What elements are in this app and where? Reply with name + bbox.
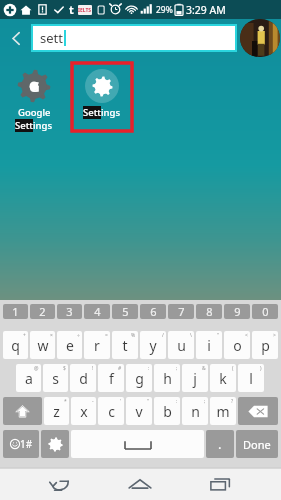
button[interactable]: z: [44, 397, 69, 425]
staticText: 1#: [20, 437, 33, 451]
button[interactable]: p: [252, 331, 278, 359]
button[interactable]: b: [154, 397, 180, 425]
button[interactable]: 8: [196, 304, 222, 319]
button[interactable]: s: [43, 364, 68, 392]
button[interactable]: x: [71, 397, 96, 425]
button[interactable]: Backspace: [238, 397, 278, 425]
button[interactable]: 0: [252, 304, 278, 319]
button[interactable]: e: [57, 331, 82, 359]
button[interactable]: 6: [140, 304, 166, 319]
button[interactable]: h: [154, 364, 180, 392]
staticText: b: [163, 402, 172, 421]
staticText: 1: [12, 304, 19, 319]
button[interactable]: 7: [168, 304, 194, 319]
staticText: 29%: [156, 4, 173, 16]
staticText: t: [69, 2, 74, 17]
staticText: h: [163, 369, 172, 388]
button[interactable]: g: [126, 364, 152, 392]
button[interactable]: 2: [30, 304, 55, 319]
staticText: $: [63, 365, 66, 372]
staticText: ": [217, 332, 220, 339]
button[interactable]: u: [168, 331, 194, 359]
button[interactable]: d: [70, 364, 96, 392]
staticText: d: [79, 369, 88, 388]
button[interactable]: v: [126, 397, 152, 425]
button[interactable]: l: [238, 364, 264, 392]
button[interactable]: f: [98, 364, 124, 392]
staticText: g: [135, 369, 144, 388]
staticText: !: [92, 365, 94, 372]
button[interactable]: 4: [84, 304, 110, 319]
staticText: v: [135, 402, 143, 421]
button[interactable]: G: [0, 63, 68, 135]
staticText: /: [162, 332, 164, 339]
button[interactable]: c: [98, 397, 124, 425]
button[interactable]: Back: [32, 468, 86, 500]
button[interactable]: 3: [57, 304, 82, 319]
button[interactable]: Shift: [3, 397, 42, 425]
button[interactable]: m: [210, 397, 236, 425]
staticText: G: [29, 76, 40, 96]
button[interactable]: sett: [32, 25, 236, 51]
button[interactable]: r: [84, 331, 110, 359]
staticText: ings: [101, 106, 121, 119]
staticText: sett: [40, 29, 63, 47]
button[interactable]: Back: [0, 19, 32, 57]
button[interactable]: k: [210, 364, 236, 392]
staticText: <: [245, 332, 248, 339]
button[interactable]: n: [182, 397, 208, 425]
button[interactable]: 1: [3, 304, 28, 319]
staticText: Google: [18, 106, 51, 119]
staticText: =: [105, 332, 108, 339]
staticText: n: [191, 402, 200, 421]
button[interactable]: w: [30, 331, 55, 359]
staticText: i: [207, 336, 211, 355]
staticText: *: [64, 398, 67, 405]
staticText: ÷: [77, 332, 80, 339]
staticText: a: [25, 369, 33, 388]
button[interactable]: Profile: [240, 19, 280, 57]
staticText: Sett: [83, 106, 101, 119]
staticText: >: [273, 332, 276, 339]
staticText: x: [80, 402, 88, 421]
staticText: e: [66, 336, 74, 355]
staticText: k: [219, 369, 227, 388]
button[interactable]: q: [3, 331, 28, 359]
button[interactable]: 9: [224, 304, 250, 319]
button[interactable]: o: [224, 331, 250, 359]
button[interactable]: .: [206, 430, 234, 458]
staticText: 9: [234, 304, 241, 319]
button[interactable]: Keyboard settings: [41, 430, 69, 458]
staticText: 6: [150, 304, 157, 319]
button[interactable]: y: [140, 331, 166, 359]
button[interactable]: Home: [113, 468, 167, 500]
button[interactable]: j: [182, 364, 208, 392]
button[interactable]: i: [196, 331, 222, 359]
staticText: j: [193, 369, 197, 388]
button[interactable]: Done: [236, 430, 278, 458]
staticText: c: [108, 402, 115, 421]
staticText: Done: [243, 437, 271, 452]
staticText: s: [52, 369, 59, 388]
button[interactable]: Sett: [68, 63, 136, 135]
staticText: \: [190, 332, 192, 339]
staticText: ;: [204, 398, 206, 405]
staticText: Sett: [15, 119, 33, 132]
staticText: :: [176, 398, 178, 405]
button[interactable]: Symbols: [3, 430, 39, 458]
staticText: p: [261, 336, 270, 355]
staticText: %: [131, 332, 136, 339]
button[interactable]: Recent apps: [194, 468, 248, 500]
staticText: r: [94, 336, 100, 355]
staticText: ;: [176, 365, 178, 372]
button[interactable]: Space: [71, 430, 204, 458]
staticText: y: [149, 336, 157, 355]
button[interactable]: a: [16, 364, 41, 392]
staticText: w: [37, 336, 49, 355]
button[interactable]: 5: [112, 304, 138, 319]
staticText: -: [92, 398, 94, 405]
staticText: 5: [122, 304, 129, 319]
staticText: q: [11, 336, 20, 355]
staticText: 0: [262, 304, 269, 319]
button[interactable]: t: [112, 331, 138, 359]
